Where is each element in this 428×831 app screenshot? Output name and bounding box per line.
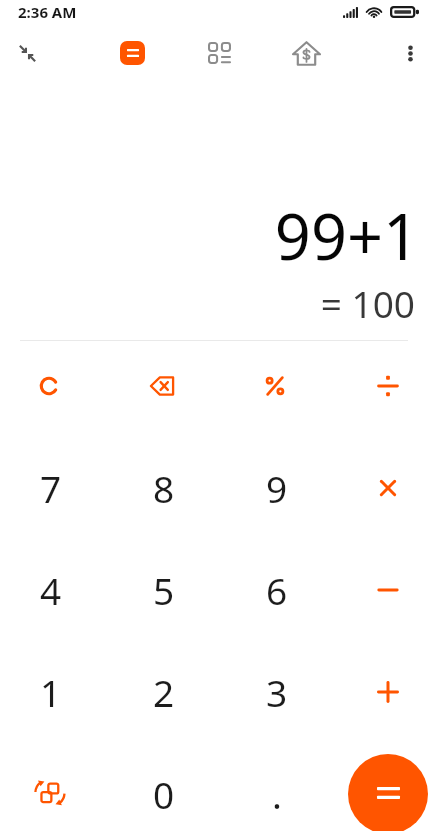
button[interactable]: 2 [122, 652, 202, 732]
staticText: 3 [266, 667, 288, 717]
button[interactable]: Collapse [7, 33, 47, 73]
button[interactable]: 5 [122, 550, 202, 630]
button[interactable]: 3 [235, 652, 315, 732]
staticText: 6 [266, 565, 288, 615]
staticText: 4 [40, 565, 62, 615]
button[interactable]: Multiply [348, 448, 428, 528]
button[interactable]: 4 [9, 550, 89, 630]
button[interactable]: 8 [122, 448, 202, 528]
button[interactable]: 6 [235, 550, 315, 630]
button[interactable]: 7 [9, 448, 89, 528]
staticText: . [272, 769, 282, 819]
staticText: 2 [153, 667, 175, 717]
button[interactable]: Plus [348, 652, 428, 732]
staticText: 7 [40, 463, 62, 513]
staticText: 8 [153, 463, 175, 513]
button[interactable]: Divide [348, 346, 428, 426]
button[interactable]: Convert [9, 754, 89, 831]
staticText: 99+1 [274, 193, 419, 279]
button[interactable]: Unit converter [199, 33, 239, 73]
button[interactable]: Backspace [122, 346, 202, 426]
staticText: 0 [153, 769, 175, 819]
staticText: 1 [40, 667, 62, 717]
button[interactable]: Equals [348, 754, 428, 831]
button[interactable]: Percent [235, 346, 315, 426]
staticText: = 100 [320, 278, 415, 328]
button[interactable]: Mortgage [286, 33, 326, 73]
button[interactable]: Clear [9, 346, 89, 426]
button[interactable]: 9 [235, 448, 315, 528]
button[interactable]: Minus [348, 550, 428, 630]
staticText: 2:36 AM [18, 2, 77, 22]
staticText: 5 [153, 565, 175, 615]
button[interactable]: . [235, 754, 315, 831]
button[interactable]: More options [390, 33, 428, 73]
button[interactable]: Calculator [112, 33, 152, 73]
staticText: 9 [266, 463, 288, 513]
button[interactable]: 1 [9, 652, 89, 732]
button[interactable]: 0 [122, 754, 202, 831]
